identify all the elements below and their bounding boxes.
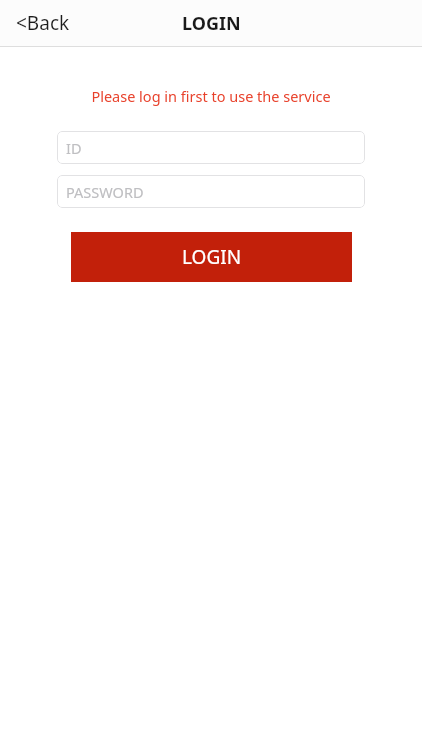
- staticText: Please log in first to use the service: [0, 86, 422, 106]
- button[interactable]: LOGIN: [71, 232, 352, 282]
- staticText: LOGIN: [182, 244, 242, 270]
- button[interactable]: PASSWORD: [57, 175, 365, 208]
- button[interactable]: <Back: [10, 4, 76, 42]
- staticText: PASSWORD: [66, 182, 144, 202]
- button[interactable]: ID: [57, 131, 365, 164]
- staticText: ID: [66, 138, 82, 158]
- staticText: LOGIN: [182, 11, 241, 36]
- staticText: <Back: [16, 10, 70, 36]
